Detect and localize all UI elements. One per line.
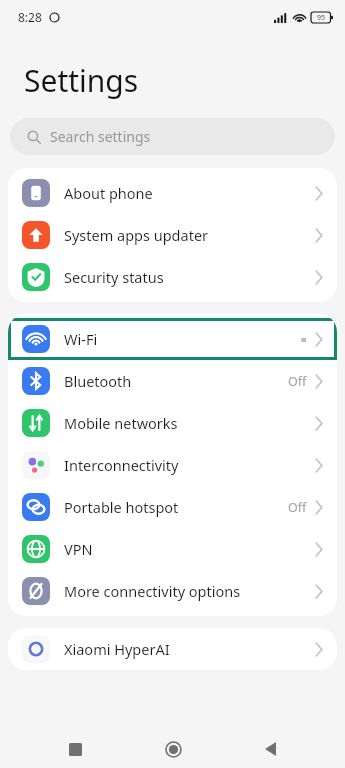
staticText: Xiaomi HyperAI: [64, 639, 315, 659]
button[interactable]: About phone: [8, 172, 337, 214]
staticText: About phone: [64, 183, 315, 203]
staticText: 8:28: [18, 9, 42, 25]
staticText: Mobile networks: [64, 413, 315, 433]
button[interactable]: Security status: [8, 256, 337, 298]
button[interactable]: Mobile networks: [8, 402, 337, 444]
button[interactable]: Bluetooth: [8, 360, 337, 402]
button[interactable]: Recent apps: [53, 730, 97, 768]
button[interactable]: Wi-Fi: [8, 318, 337, 360]
staticText: Security status: [64, 267, 315, 287]
staticText: Search settings: [50, 127, 151, 146]
staticText: Off: [288, 499, 307, 516]
staticText: Off: [288, 373, 307, 390]
staticText: Portable hotspot: [64, 497, 288, 517]
button[interactable]: More connectivity options: [8, 570, 337, 612]
staticText: 95: [317, 13, 326, 23]
staticText: Bluetooth: [64, 371, 288, 391]
button[interactable]: System apps updater: [8, 214, 337, 256]
staticText: Interconnectivity: [64, 455, 315, 475]
staticText: System apps updater: [64, 225, 315, 245]
staticText: VPN: [64, 539, 315, 559]
button[interactable]: VPN: [8, 528, 337, 570]
button[interactable]: Xiaomi HyperAI: [8, 628, 337, 670]
button[interactable]: Back: [248, 730, 292, 768]
staticText: Settings: [24, 60, 139, 101]
button[interactable]: Search settings: [10, 118, 335, 155]
staticText: Wi-Fi: [64, 329, 297, 349]
button[interactable]: Portable hotspot: [8, 486, 337, 528]
staticText: More connectivity options: [64, 581, 315, 601]
button[interactable]: Home: [151, 730, 195, 768]
button[interactable]: Interconnectivity: [8, 444, 337, 486]
